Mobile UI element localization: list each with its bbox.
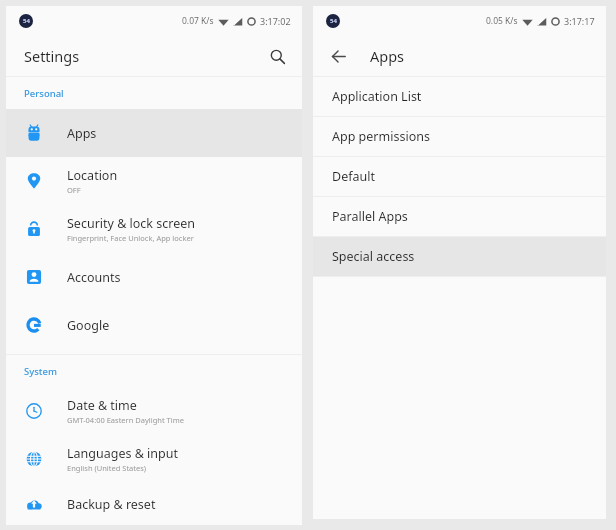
staticText: Parallel Apps <box>332 208 408 225</box>
staticText: App permissions <box>332 128 430 145</box>
staticText: 3:17:17 <box>564 15 595 27</box>
staticText: Location <box>67 167 118 184</box>
button[interactable]: Backup & reset <box>6 483 302 525</box>
button[interactable]: Accounts <box>6 253 302 301</box>
staticText: Security & lock screen <box>67 215 196 232</box>
staticText: Settings <box>24 46 80 66</box>
staticText: Date & time <box>67 397 137 414</box>
button[interactable]: Date & time <box>6 387 302 435</box>
staticText: GMT-04:00 Eastern Daylight Time <box>67 415 184 425</box>
staticText: Languages & input <box>67 445 178 462</box>
button[interactable]: Search <box>262 41 292 71</box>
button[interactable]: Google <box>6 301 302 349</box>
button[interactable]: Parallel Apps <box>313 197 606 236</box>
button[interactable]: Security & lock screen <box>6 205 302 253</box>
staticText: System <box>24 365 57 378</box>
button[interactable]: Back <box>323 41 353 71</box>
staticText: 54 <box>330 17 337 25</box>
staticText: English (United States) <box>67 463 147 473</box>
button[interactable]: App permissions <box>313 117 606 156</box>
staticText: 3:17:02 <box>260 15 291 27</box>
staticText: Apps <box>370 46 405 66</box>
staticText: Accounts <box>67 269 121 286</box>
staticText: 54 <box>23 17 30 25</box>
staticText: OFF <box>67 185 81 195</box>
button[interactable]: Apps <box>6 109 302 157</box>
staticText: Special access <box>332 248 415 265</box>
staticText: 0.07 K/s <box>182 15 214 27</box>
button[interactable]: Special access <box>313 237 606 276</box>
staticText: Personal <box>24 87 64 100</box>
staticText: Google <box>67 317 110 334</box>
staticText: Application List <box>332 88 422 105</box>
staticText: 0.05 K/s <box>486 15 518 27</box>
button[interactable]: Languages & input <box>6 435 302 483</box>
staticText: Fingerprint, Face Unlock, App locker <box>67 233 194 243</box>
staticText: Backup & reset <box>67 496 156 513</box>
button[interactable]: Default <box>313 157 606 196</box>
button[interactable]: Location <box>6 157 302 205</box>
staticText: Default <box>332 168 375 185</box>
button[interactable]: Application List <box>313 77 606 116</box>
staticText: Apps <box>67 125 97 142</box>
